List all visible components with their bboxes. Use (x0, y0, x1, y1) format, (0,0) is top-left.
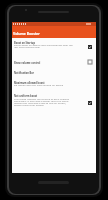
button[interactable]: Maximum allowed boost (12, 79, 96, 89)
staticText: Notification Bar (14, 71, 34, 74)
staticText: Be careful with too loud volume on devic… (14, 83, 64, 86)
staticText: Maximum allowed boost (14, 81, 45, 84)
button[interactable]: Notification Bar (12, 69, 96, 76)
staticText: Show volume control (14, 61, 41, 64)
button[interactable]: Toggle setting (85, 43, 94, 50)
staticText: Boost audio on device start automaticall… (14, 43, 73, 49)
staticText: Volume Booster (13, 31, 40, 36)
button[interactable]: Boost on Startup (12, 39, 96, 52)
staticText: This mode handles the volume of each cha… (14, 97, 70, 107)
button[interactable]: Not uniform boost (12, 92, 96, 109)
staticText: Not uniform boost (14, 94, 38, 97)
button[interactable]: Toggle setting (85, 58, 94, 65)
staticText: Boost on Startup (14, 41, 35, 44)
button[interactable]: Toggle setting (85, 99, 94, 106)
button[interactable]: Show volume control (12, 59, 96, 70)
